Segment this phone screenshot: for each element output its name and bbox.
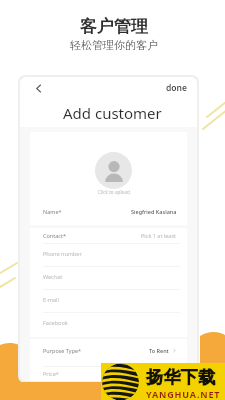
- button[interactable]: Upload avatar: [95, 152, 132, 189]
- button[interactable]: Purpose Type*: [30, 339, 187, 367]
- staticText: Purpose Type*: [43, 347, 82, 354]
- staticText: Name*: [43, 208, 62, 215]
- button[interactable]: Facebook: [30, 313, 187, 336]
- staticText: Siegfried Kaslana: [131, 208, 177, 215]
- button[interactable]: done: [164, 80, 189, 96]
- button[interactable]: E-mail: [30, 290, 187, 313]
- staticText: Contact*: [43, 232, 66, 239]
- button[interactable]: Price*: [30, 367, 187, 381]
- staticText: Phone number: [43, 250, 82, 257]
- staticText: To Rent: [149, 347, 169, 354]
- button[interactable]: Phone number: [30, 244, 187, 267]
- staticText: 扬华下载: [146, 367, 216, 388]
- button[interactable]: Contact*: [30, 228, 187, 244]
- staticText: E-mail: [43, 296, 59, 303]
- staticText: 客户管理: [80, 16, 148, 37]
- button[interactable]: Name*: [30, 202, 187, 225]
- staticText: 轻松管理你的客户: [70, 38, 158, 52]
- staticText: YANGHUA.NET: [146, 388, 221, 400]
- staticText: Facebook: [43, 319, 68, 326]
- staticText: Wechat: [43, 273, 63, 280]
- button[interactable]: Wechat: [30, 267, 187, 290]
- staticText: Pick 1 at least: [141, 232, 177, 239]
- staticText: done: [166, 82, 187, 94]
- staticText: Price*: [43, 370, 59, 377]
- staticText: Click to upload: [98, 189, 130, 195]
- staticText: Add customer: [63, 103, 162, 123]
- button[interactable]: Back: [31, 81, 45, 95]
